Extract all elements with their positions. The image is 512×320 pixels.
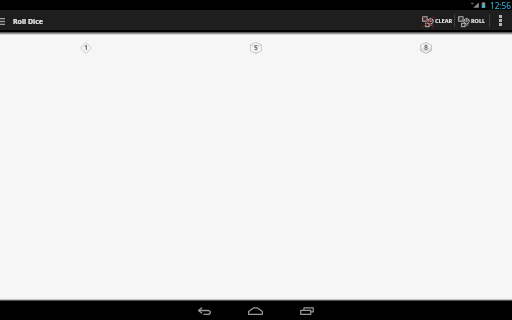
- button[interactable]: Back: [198, 301, 214, 320]
- button[interactable]: Recent apps: [300, 301, 316, 320]
- button[interactable]: ROLL: [458, 10, 486, 30]
- staticText: ROLL: [471, 17, 486, 24]
- staticText: 8: [424, 43, 429, 53]
- staticText: 1: [84, 43, 89, 53]
- staticText: CLEAR: [435, 17, 453, 24]
- button[interactable]: Home: [248, 301, 265, 320]
- button[interactable]: Die showing 8: [420, 42, 432, 54]
- staticText: 12:56: [490, 0, 511, 10]
- button[interactable]: CLEAR: [422, 10, 453, 30]
- button[interactable]: More options: [498, 10, 502, 30]
- button[interactable]: Die showing 5: [250, 42, 262, 54]
- staticText: 5: [254, 43, 259, 53]
- button[interactable]: Navigate up: [0, 11, 9, 31]
- button[interactable]: Die showing 1: [80, 42, 92, 54]
- staticText: Roll Dice: [13, 17, 43, 27]
